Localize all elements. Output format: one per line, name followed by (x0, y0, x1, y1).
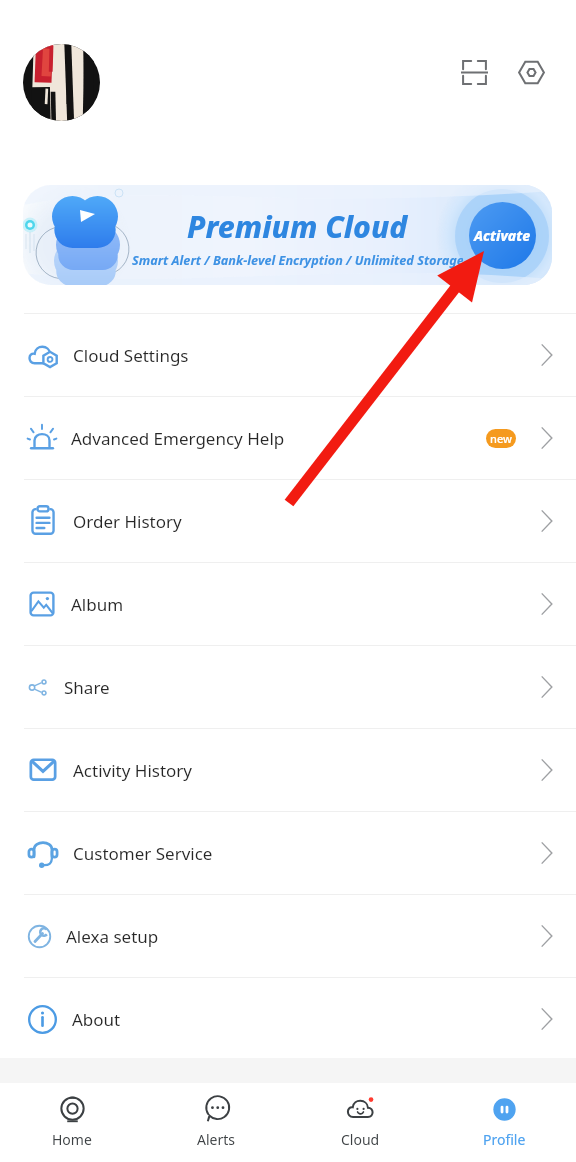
staticText: Premium Cloud (187, 206, 408, 247)
staticText: Advanced Emergency Help (71, 427, 285, 450)
staticText: Activate (474, 226, 531, 245)
staticText: Alerts (197, 1130, 235, 1149)
button[interactable]: Home (0, 1083, 144, 1162)
button[interactable]: About (0, 977, 576, 1060)
button[interactable]: Scan (450, 48, 498, 96)
button[interactable]: Profile (432, 1083, 576, 1162)
staticText: Cloud Settings (73, 344, 189, 367)
staticText: Home (52, 1130, 92, 1149)
staticText: Cloud (341, 1130, 380, 1149)
staticText: Customer Service (73, 842, 213, 865)
button[interactable]: Activate (469, 202, 536, 269)
button[interactable]: Share (0, 645, 576, 728)
button[interactable]: Alexa setup (0, 894, 576, 977)
button[interactable]: Premium Cloud (23, 185, 552, 285)
button[interactable]: Order History (0, 479, 576, 562)
staticText: Activity History (73, 759, 193, 782)
staticText: new (490, 431, 512, 446)
button[interactable]: Advanced Emergency Help (0, 396, 576, 479)
staticText: About (72, 1008, 121, 1031)
button[interactable]: Customer Service (0, 811, 576, 894)
staticText: Alexa setup (66, 925, 159, 948)
button[interactable]: Activity History (0, 728, 576, 811)
staticText: Order History (73, 510, 182, 533)
staticText: Smart Alert / Bank-level Encryption / Un… (132, 251, 463, 268)
button[interactable]: Album (0, 562, 576, 645)
staticText: Profile (483, 1130, 526, 1149)
staticText: Album (71, 593, 124, 616)
button[interactable]: Alerts (144, 1083, 288, 1162)
button[interactable]: Cloud (288, 1083, 432, 1162)
button[interactable]: Profile photo (23, 44, 100, 121)
button[interactable]: Settings (507, 48, 555, 96)
button[interactable]: Cloud Settings (0, 313, 576, 396)
staticText: Share (64, 676, 110, 699)
